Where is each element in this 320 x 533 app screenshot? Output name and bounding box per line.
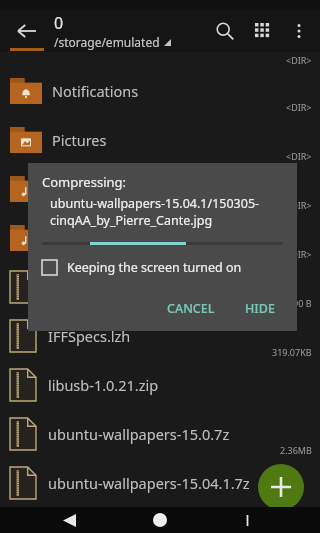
staticText: <DIR> [286, 199, 312, 211]
button[interactable]: Recents [234, 507, 260, 533]
button[interactable]: Grid view [244, 12, 282, 50]
button[interactable]: More options [282, 14, 316, 48]
staticText: 319.07KB [272, 346, 312, 358]
button[interactable]: Download.7z [0, 262, 320, 311]
button[interactable]: Add [258, 464, 304, 510]
button[interactable]: Pictures [0, 115, 320, 164]
staticText: libusb-1.0.21.zip [48, 375, 159, 395]
button[interactable]: Search [206, 12, 244, 50]
button[interactable]: Back [6, 11, 46, 51]
staticText: Ringtones [52, 228, 121, 248]
staticText: HIDE [245, 300, 275, 317]
staticText: <DIR> [286, 101, 312, 113]
button[interactable]: ubuntu-wallpapers-15.04.1.7z [0, 458, 320, 507]
button[interactable]: Notifications [0, 66, 320, 115]
staticText: ubuntu-wallpapers-15.04.1.7z [48, 473, 250, 493]
staticText: /storage/emulated [54, 34, 160, 50]
staticText: <DIR> [286, 150, 312, 162]
button[interactable]: Back [56, 507, 82, 533]
staticText: IFFSpecs.lzh [48, 326, 131, 346]
staticText: ubuntu-wallpapers-15.04.1/150305-cinqAA_… [50, 195, 283, 228]
staticText: 0 [54, 12, 64, 34]
staticText: <DIR> [286, 248, 312, 260]
button[interactable]: HIDE [237, 294, 283, 323]
staticText: <DIR> [286, 54, 312, 66]
staticText: 2.36MB [280, 444, 312, 456]
button[interactable]: Keeping the screen turned on [42, 259, 283, 276]
button[interactable]: Home [147, 507, 173, 533]
staticText: Pictures [52, 130, 107, 150]
button[interactable]: ubuntu-wallpapers-15.0.7z [0, 409, 320, 458]
staticText: Keeping the screen turned on [67, 259, 242, 276]
button[interactable]: IFFSpecs.lzh [0, 311, 320, 360]
staticText: ubuntu-wallpapers-15.0.7z [48, 424, 230, 444]
staticText: Notifications [52, 81, 139, 101]
staticText: Compressing: [42, 173, 126, 191]
staticText: 90 B [293, 297, 312, 309]
button[interactable]: Podcasts [0, 164, 320, 213]
button[interactable]: libusb-1.0.21.zip [0, 360, 320, 409]
button[interactable]: Ringtones [0, 213, 320, 262]
staticText: Podcasts [52, 179, 113, 199]
button[interactable]: CANCEL [159, 294, 223, 323]
staticText: CANCEL [167, 300, 215, 317]
